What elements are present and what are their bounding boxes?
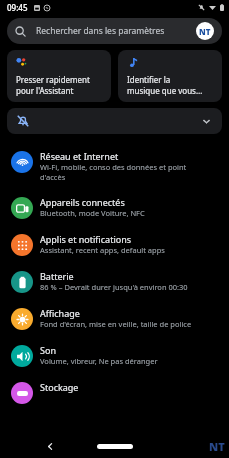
button[interactable]: Stockage — [0, 374, 229, 411]
staticText: 86 % – Devrait durer jusqu'à environ 00:… — [40, 282, 188, 292]
staticText: Assistant, recent apps, default apps — [40, 245, 165, 255]
other: Do not disturb — [17, 115, 29, 127]
staticText: Wi-Fi, mobile, conso des données et poin… — [40, 162, 187, 182]
staticText: Applis et notifications — [40, 233, 132, 245]
button[interactable]: Identifier la — [118, 50, 222, 102]
other: Expand — [201, 116, 212, 127]
button[interactable]: Back — [42, 438, 58, 454]
button[interactable]: Applis et notifications — [0, 226, 229, 263]
staticText: pour l'Assistant — [16, 85, 74, 96]
button[interactable]: Son — [0, 337, 229, 374]
staticText: 09:45 — [7, 2, 28, 13]
staticText: Affichage — [40, 307, 80, 319]
button[interactable]: Home — [97, 444, 133, 449]
button[interactable]: Account — [196, 22, 214, 40]
staticText: Fond d'écran, mise en veille, taille de … — [40, 319, 192, 329]
button[interactable]: Do not disturb — [7, 108, 222, 134]
staticText: Identifier la — [127, 74, 171, 85]
staticText: NT — [199, 26, 211, 37]
staticText: Presser rapidement — [16, 74, 90, 85]
button[interactable]: Presser rapidement — [7, 50, 111, 102]
staticText: Batterie — [40, 270, 74, 282]
staticText: Volume, vibreur, Ne pas déranger — [40, 356, 158, 366]
staticText: Rechercher dans les paramètres — [36, 25, 196, 37]
staticText: Bluetooth, mode Voiture, NFC — [40, 208, 145, 218]
staticText: Réseau et Internet — [40, 150, 119, 162]
staticText: NT — [209, 439, 225, 454]
button[interactable]: Appareils connectés — [0, 189, 229, 226]
other: Search — [15, 26, 26, 37]
staticText: Appareils connectés — [40, 196, 125, 208]
button[interactable]: Réseau et Internet — [0, 143, 229, 189]
staticText: Son — [40, 344, 56, 356]
staticText: musique que vous… — [127, 85, 203, 96]
staticText: Stockage — [40, 381, 79, 393]
button[interactable]: Search — [7, 18, 222, 44]
button[interactable]: Affichage — [0, 300, 229, 337]
button[interactable]: Batterie — [0, 263, 229, 300]
